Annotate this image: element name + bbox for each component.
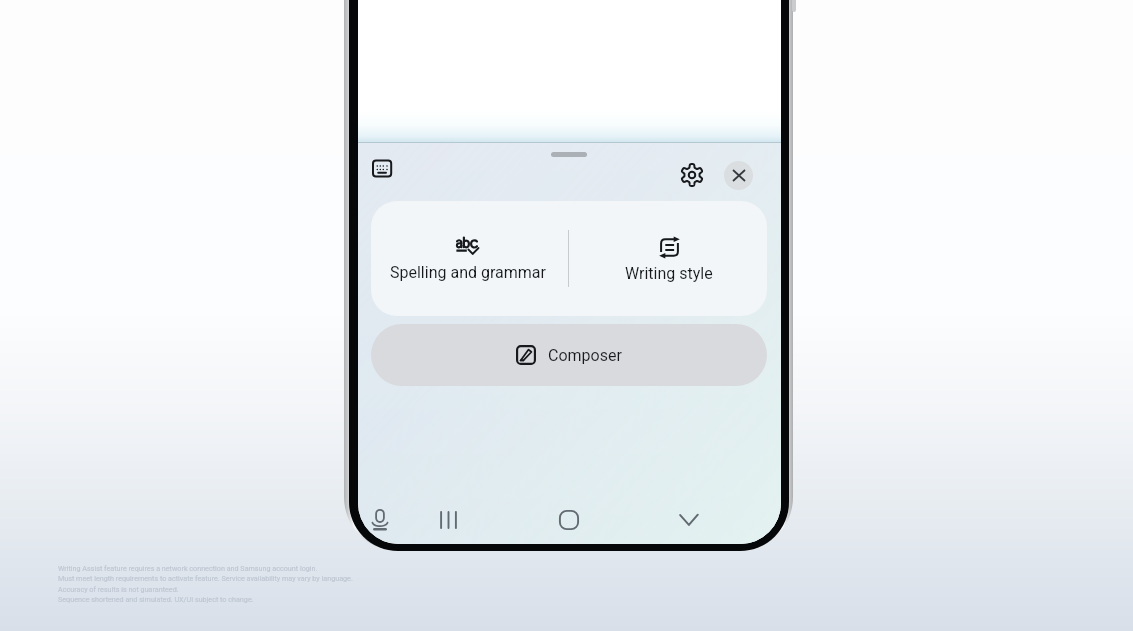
- staticText: Composer: [548, 346, 622, 365]
- staticText: Writing style: [625, 264, 713, 283]
- button[interactable]: Back: [670, 501, 708, 539]
- button[interactable]: Recents: [430, 501, 468, 539]
- staticText: Writing Assist feature requires a networ…: [58, 564, 318, 572]
- staticText: Sequence shortened and simulated. UX/UI …: [58, 595, 254, 603]
- button[interactable]: Close: [724, 161, 753, 190]
- staticText: Must meet length requirements to activat…: [58, 574, 353, 582]
- button[interactable]: Settings: [673, 156, 711, 194]
- button[interactable]: Voice input: [361, 501, 399, 539]
- button[interactable]: Keyboard: [364, 150, 400, 186]
- staticText: Spelling and grammar: [390, 263, 546, 282]
- button[interactable]: Composer: [371, 324, 767, 386]
- button[interactable]: Writing style: [569, 201, 767, 316]
- staticText: Accuracy of results is not guaranteed.: [58, 585, 179, 593]
- button[interactable]: Spelling and grammar: [371, 201, 568, 316]
- button[interactable]: Home: [550, 501, 588, 539]
